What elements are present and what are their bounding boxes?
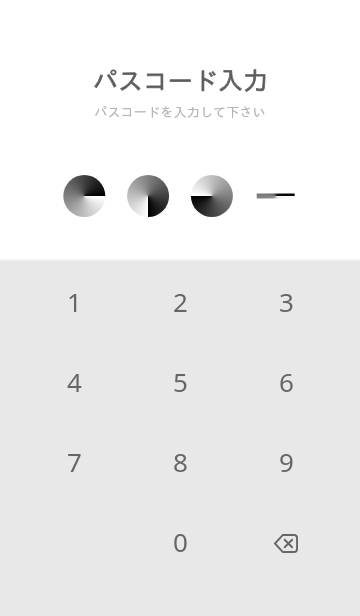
staticText: 1 [67, 284, 82, 319]
button[interactable]: 9 [233, 421, 339, 501]
button[interactable]: 7 [21, 421, 127, 501]
staticText: 6 [279, 364, 294, 399]
button[interactable]: 5 [127, 341, 233, 421]
staticText: パスコード入力 [93, 68, 268, 93]
button[interactable]: 6 [233, 341, 339, 421]
staticText: 8 [173, 444, 188, 479]
button[interactable]: 2 [127, 261, 233, 341]
staticText: 9 [279, 444, 294, 479]
staticText: 5 [173, 364, 188, 399]
button[interactable]: 1 [21, 261, 127, 341]
button[interactable]: 8 [127, 421, 233, 501]
staticText: 7 [67, 444, 82, 479]
staticText: 2 [173, 284, 188, 319]
button[interactable]: 3 [233, 261, 339, 341]
staticText: パスコードを入力して下さい [94, 105, 266, 118]
button[interactable]: Backspace [233, 501, 339, 581]
staticText: 4 [67, 364, 82, 399]
staticText: 0 [173, 524, 188, 559]
other: Backspace [274, 534, 298, 553]
button[interactable]: 4 [21, 341, 127, 421]
staticText: パスコード入力 [93, 68, 268, 93]
button[interactable]: 0 [127, 501, 233, 581]
staticText: 3 [279, 284, 294, 319]
